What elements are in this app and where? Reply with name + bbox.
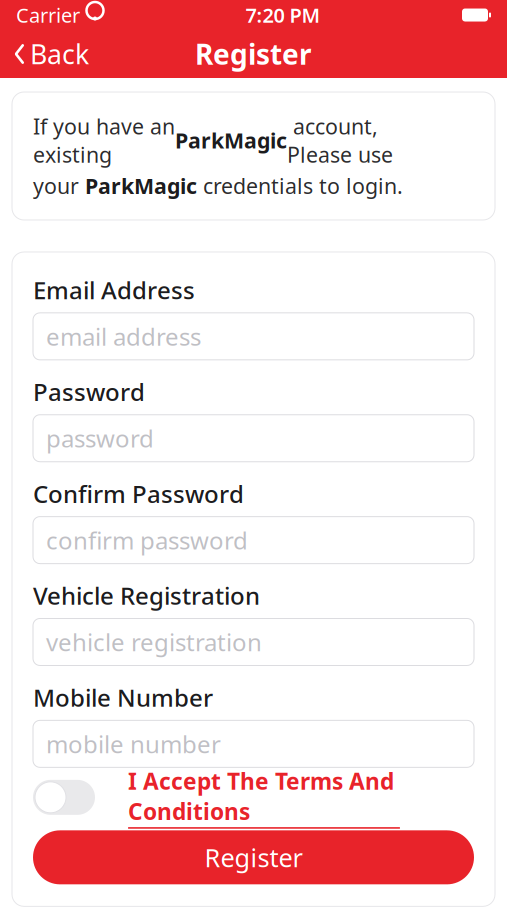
staticText: mobile number bbox=[46, 728, 221, 760]
button[interactable]: password bbox=[33, 415, 474, 462]
staticText: Email Address bbox=[33, 274, 195, 306]
button[interactable]: vehicle registration bbox=[33, 618, 474, 665]
staticText: password bbox=[46, 422, 154, 454]
button[interactable]: confirm password bbox=[33, 517, 474, 564]
button[interactable]: Accept the terms and conditions bbox=[33, 780, 95, 815]
staticText: Register bbox=[204, 840, 302, 874]
staticText: Carrier bbox=[16, 2, 80, 28]
staticText: Mobile Number bbox=[33, 681, 213, 713]
staticText: I Accept The Terms And Conditions bbox=[128, 766, 394, 826]
staticText: ParkMagic bbox=[175, 126, 287, 154]
button[interactable]: Back bbox=[0, 32, 103, 76]
staticText: Register bbox=[195, 35, 312, 73]
staticText: confirm password bbox=[46, 524, 248, 556]
button[interactable]: Register bbox=[33, 830, 474, 884]
button[interactable]: mobile number bbox=[33, 720, 474, 767]
staticText: If you have an existing bbox=[33, 112, 175, 169]
staticText: Confirm Password bbox=[33, 478, 244, 510]
staticText: email address bbox=[46, 320, 201, 352]
staticText: ParkMagic bbox=[85, 172, 197, 200]
staticText: 7:20 PM bbox=[245, 2, 320, 28]
staticText: credentials to login. bbox=[197, 172, 403, 200]
staticText: Vehicle Registration bbox=[33, 580, 260, 611]
button[interactable]: I Accept The Terms And Conditions bbox=[128, 766, 400, 829]
button[interactable]: email address bbox=[33, 313, 474, 360]
staticText: your bbox=[33, 172, 85, 200]
staticText: account, Please use bbox=[287, 112, 393, 169]
staticText: vehicle registration bbox=[46, 626, 262, 658]
staticText: Back bbox=[30, 36, 89, 72]
staticText: Password bbox=[33, 376, 145, 408]
